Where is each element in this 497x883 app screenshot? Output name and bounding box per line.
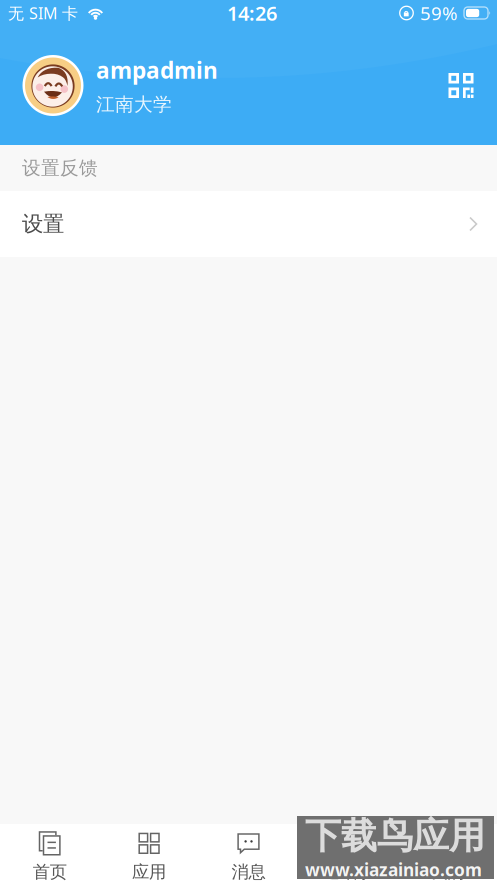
button[interactable]: 消息 [199, 824, 298, 883]
staticText: www.xiazainiao.com [305, 858, 482, 881]
staticText: 下载鸟应用 [305, 814, 485, 858]
staticText: 我的 [430, 861, 464, 883]
button[interactable]: 我的 [398, 824, 497, 883]
staticText: 应用 [132, 861, 166, 883]
button[interactable]: 首页 [0, 824, 99, 883]
staticText: 消息 [231, 861, 265, 883]
button[interactable]: 应用 [99, 824, 199, 883]
staticText: 59% [420, 1, 458, 25]
staticText: 通讯录 [322, 861, 373, 883]
staticText: 首页 [33, 861, 67, 883]
staticText: 14:26 [227, 0, 277, 26]
staticText: 设置 [22, 211, 64, 237]
button[interactable]: 设置 [0, 191, 497, 257]
button[interactable]: 通讯录 [298, 824, 398, 883]
button[interactable]: 扫一扫 [439, 63, 483, 107]
staticText: 无 SIM 卡 [8, 2, 78, 24]
staticText: 设置反馈 [22, 156, 98, 179]
staticText: 江南大学 [96, 93, 172, 116]
staticText: ampadmin [96, 55, 218, 85]
